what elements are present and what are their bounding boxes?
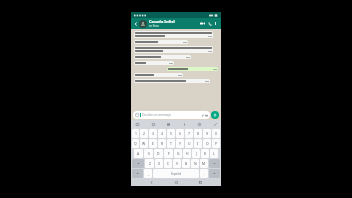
staticText: X <box>158 161 160 166</box>
button[interactable]: P <box>212 139 220 148</box>
button[interactable]: 8 <box>194 129 202 138</box>
staticText: H <box>186 151 189 156</box>
staticText: N <box>194 161 197 166</box>
button[interactable]: Symbols <box>132 169 143 178</box>
staticText: J <box>196 151 197 156</box>
button[interactable]: Keyboard tool 1 <box>134 121 140 127</box>
button[interactable] <box>167 67 218 71</box>
staticText: Q <box>134 141 137 146</box>
button[interactable]: Casada Infiel <box>149 19 199 28</box>
staticText: en línea <box>149 24 159 28</box>
button[interactable]: S <box>144 149 153 158</box>
staticText: S <box>148 151 150 156</box>
staticText: K <box>204 151 207 156</box>
staticText: Z <box>149 161 151 166</box>
button[interactable]: 3 <box>149 129 157 138</box>
button[interactable] <box>134 31 213 38</box>
button[interactable]: Home <box>173 179 180 186</box>
button[interactable]: H <box>183 149 191 158</box>
button[interactable]: Z <box>145 159 154 168</box>
staticText: 0 <box>215 131 217 136</box>
button[interactable]: T <box>167 139 175 148</box>
staticText: C <box>167 161 170 166</box>
button[interactable]: Camera <box>205 114 208 117</box>
button[interactable]: B <box>182 159 190 168</box>
button[interactable]: Keyboard tool 3 <box>165 121 171 127</box>
button[interactable]: Keyboard tool 6 <box>212 121 218 127</box>
button[interactable]: X <box>155 159 163 168</box>
button[interactable]: Shift <box>132 159 144 168</box>
staticText: Escribe un mensaje <box>142 113 172 117</box>
button[interactable]: I <box>194 139 202 148</box>
button[interactable]: 0 <box>212 129 220 138</box>
staticText: O <box>206 141 209 146</box>
staticText: R <box>161 141 164 146</box>
button[interactable]: Escribe un mensaje <box>133 111 210 119</box>
button[interactable]: K <box>201 149 209 158</box>
button[interactable] <box>134 61 174 65</box>
button[interactable]: Backspace <box>209 159 220 168</box>
staticText: F <box>168 151 170 156</box>
button[interactable]: 4 <box>158 129 166 138</box>
button[interactable]: Keyboard tool 2 <box>150 121 156 127</box>
staticText: P <box>215 141 218 146</box>
button[interactable]: 1 <box>132 129 139 138</box>
button[interactable]: Recents <box>197 179 204 186</box>
button[interactable]: Keyboard tool 4 <box>181 121 187 127</box>
button[interactable] <box>134 40 188 44</box>
button[interactable]: Video call <box>199 20 206 27</box>
button[interactable]: . <box>200 169 208 178</box>
staticText: L <box>213 151 215 156</box>
button[interactable]: G <box>174 149 182 158</box>
button[interactable]: E <box>149 139 157 148</box>
button[interactable]: Send voice message <box>211 111 219 119</box>
button[interactable]: U <box>185 139 193 148</box>
button[interactable]: 2 <box>140 129 148 138</box>
button[interactable] <box>134 46 213 53</box>
button[interactable]: Attach <box>201 114 204 117</box>
button[interactable]: More options <box>213 21 218 26</box>
button[interactable]: 5 <box>167 129 175 138</box>
button[interactable]: O <box>203 139 211 148</box>
staticText: E <box>152 141 154 146</box>
button[interactable]: A <box>134 149 143 158</box>
button[interactable] <box>134 79 210 83</box>
button[interactable]: M <box>200 159 208 168</box>
button[interactable]: Enter <box>209 169 220 178</box>
button[interactable]: Voice call <box>206 20 213 27</box>
staticText: G <box>177 151 180 156</box>
button[interactable]: L <box>210 149 218 158</box>
button[interactable]: Back <box>133 21 139 27</box>
button[interactable]: 9 <box>203 129 211 138</box>
button[interactable]: F <box>164 149 173 158</box>
staticText: I <box>197 141 199 146</box>
button[interactable]: Keyboard tool 5 <box>196 121 202 127</box>
staticText: 4 <box>161 131 163 136</box>
staticText: A <box>137 151 140 156</box>
button[interactable]: N <box>191 159 199 168</box>
button[interactable]: C <box>164 159 172 168</box>
staticText: Y <box>179 141 181 146</box>
button[interactable]: V <box>173 159 181 168</box>
button[interactable]: Q <box>132 139 139 148</box>
button[interactable]: Y <box>176 139 184 148</box>
button[interactable]: , <box>144 169 152 178</box>
staticText: 6 <box>179 131 181 136</box>
staticText: T <box>170 141 172 146</box>
staticText: , <box>148 171 149 176</box>
button[interactable]: Español <box>153 169 199 178</box>
button[interactable]: R <box>158 139 166 148</box>
button[interactable]: Back <box>148 179 155 186</box>
staticText: 9 <box>206 131 208 136</box>
button[interactable]: W <box>140 139 148 148</box>
staticText: Español <box>171 172 182 176</box>
button[interactable] <box>134 73 183 77</box>
button[interactable]: 6 <box>176 129 184 138</box>
staticText: U <box>188 141 191 146</box>
button[interactable] <box>134 55 191 59</box>
staticText: Casada Infiel <box>149 19 175 24</box>
staticText: 1 <box>135 131 137 136</box>
button[interactable]: D <box>154 149 163 158</box>
button[interactable]: 7 <box>185 129 193 138</box>
button[interactable]: J <box>192 149 200 158</box>
